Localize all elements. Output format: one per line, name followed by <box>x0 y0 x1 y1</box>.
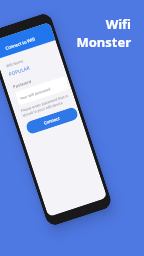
button[interactable]: Your wifi password <box>15 76 69 106</box>
button[interactable]: Connect <box>25 106 79 135</box>
staticText: Connect to Wifi <box>5 36 36 52</box>
staticText: Wifi Name <box>5 58 24 69</box>
staticText: Connect <box>43 116 61 127</box>
staticText: Your wifi password <box>19 86 51 101</box>
staticText: Password <box>12 79 32 90</box>
staticText: Monster <box>76 33 131 51</box>
staticText: POPULAR <box>8 65 31 78</box>
button[interactable]: Connect to Wifi <box>0 22 55 59</box>
staticText: Please enter password that is stored in … <box>20 93 71 118</box>
staticText: Wifi <box>105 15 131 33</box>
